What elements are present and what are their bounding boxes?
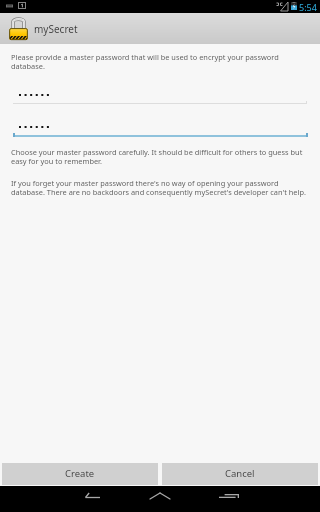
button[interactable]: Create	[2, 463, 158, 485]
button[interactable]: Back	[63, 486, 121, 512]
button[interactable]: Cancel	[162, 463, 318, 485]
other: Keyboard	[6, 4, 13, 8]
staticText: Create	[65, 467, 95, 480]
staticText: Choose your master password carefully. I…	[11, 147, 308, 166]
staticText: Please provide a master password that wi…	[11, 52, 308, 71]
staticText: If you forget your master password there…	[11, 178, 308, 197]
staticText: mySecret	[34, 22, 78, 36]
button[interactable]: Home	[131, 486, 189, 512]
button[interactable]: Master password	[13, 88, 307, 103]
button[interactable]: Repeat master password	[13, 120, 307, 137]
staticText: Cancel	[225, 467, 255, 480]
button[interactable]: Recent apps	[199, 486, 257, 512]
staticText: 5:54	[299, 1, 317, 13]
